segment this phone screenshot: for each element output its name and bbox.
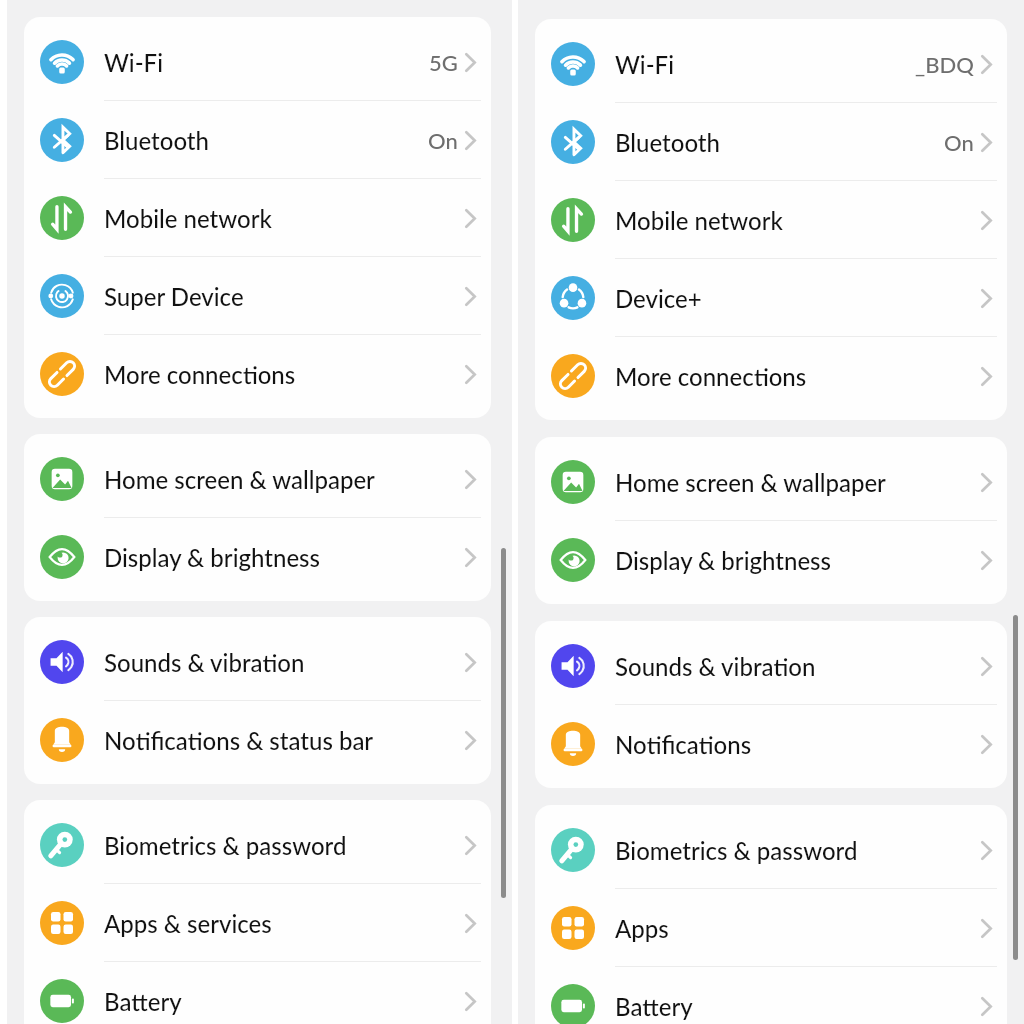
button[interactable]: Display & brightness xyxy=(535,521,1007,599)
staticText: Device+ xyxy=(615,284,702,313)
button[interactable]: Mobile network xyxy=(24,179,491,257)
staticText: Notifications xyxy=(615,730,752,759)
staticText: Wi-Fi xyxy=(615,50,674,79)
staticText: Sounds & vibration xyxy=(104,648,305,677)
staticText: Bluetooth xyxy=(104,126,209,155)
button[interactable]: Sounds & vibration xyxy=(24,623,491,701)
button[interactable]: Apps xyxy=(535,889,1007,967)
staticText: Notifications & status bar xyxy=(104,726,374,755)
staticText: Home screen & wallpaper xyxy=(615,468,886,497)
button[interactable]: Notifications & status bar xyxy=(24,701,491,779)
button[interactable]: More connections xyxy=(24,335,491,413)
button[interactable]: Super Device xyxy=(24,257,491,335)
button[interactable]: Battery xyxy=(535,967,1007,1024)
staticText: Mobile network xyxy=(615,206,783,235)
button[interactable]: Biometrics & password xyxy=(535,811,1007,889)
staticText: 5G xyxy=(429,49,458,75)
staticText: Biometrics & password xyxy=(104,831,347,860)
staticText: Display & brightness xyxy=(615,546,831,575)
staticText: Home screen & wallpaper xyxy=(104,465,375,494)
staticText: Sounds & vibration xyxy=(615,652,816,681)
staticText: _BDQ xyxy=(915,51,974,77)
button[interactable]: Wi-Fi xyxy=(535,25,1007,103)
staticText: Wi-Fi xyxy=(104,48,163,77)
staticText: On xyxy=(428,127,458,153)
staticText: Biometrics & password xyxy=(615,836,858,865)
staticText: On xyxy=(944,129,974,155)
staticText: More connections xyxy=(104,360,296,389)
button[interactable]: Mobile network xyxy=(535,181,1007,259)
button[interactable]: Home screen & wallpaper xyxy=(535,443,1007,521)
button[interactable]: Device+ xyxy=(535,259,1007,337)
button[interactable]: Wi-Fi xyxy=(24,23,491,101)
button[interactable]: Notifications xyxy=(535,705,1007,783)
staticText: Display & brightness xyxy=(104,543,320,572)
button[interactable]: Biometrics & password xyxy=(24,806,491,884)
staticText: Battery xyxy=(104,987,182,1016)
staticText: Apps xyxy=(615,914,669,943)
staticText: Bluetooth xyxy=(615,128,720,157)
button[interactable]: More connections xyxy=(535,337,1007,415)
staticText: Apps & services xyxy=(104,909,272,938)
button[interactable]: Battery xyxy=(24,962,491,1024)
button[interactable]: Display & brightness xyxy=(24,518,491,596)
button[interactable]: Apps & services xyxy=(24,884,491,962)
staticText: Battery xyxy=(615,992,693,1021)
button[interactable]: Home screen & wallpaper xyxy=(24,440,491,518)
staticText: More connections xyxy=(615,362,807,391)
staticText: Mobile network xyxy=(104,204,272,233)
staticText: Super Device xyxy=(104,282,244,311)
button[interactable]: Bluetooth xyxy=(24,101,491,179)
button[interactable]: Sounds & vibration xyxy=(535,627,1007,705)
button[interactable]: Bluetooth xyxy=(535,103,1007,181)
